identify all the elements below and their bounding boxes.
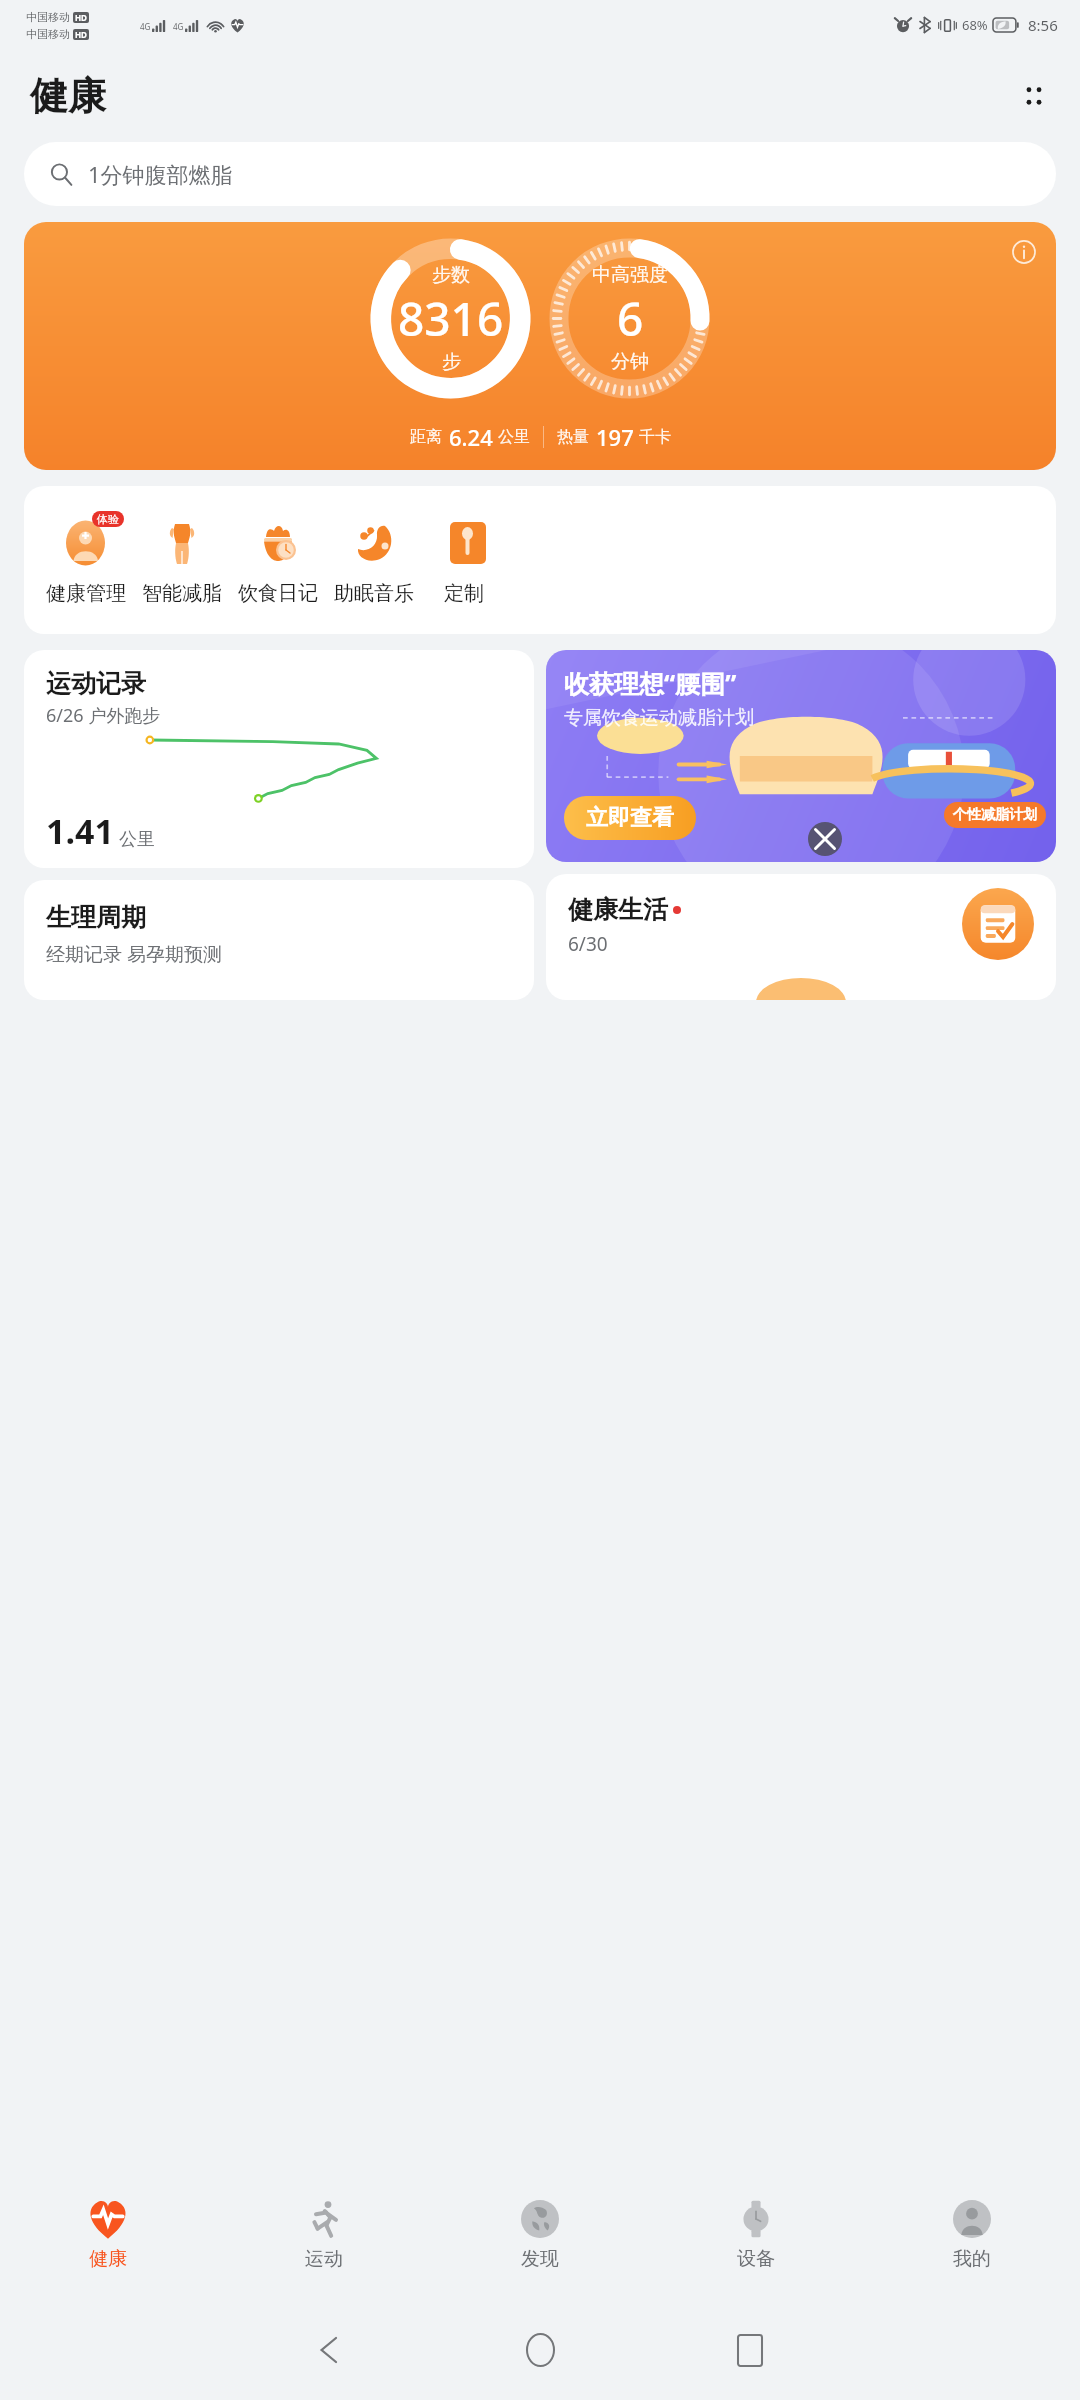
staticText: 分钟 [611,350,649,374]
staticText: 健康 [30,72,106,120]
staticText: 个性减脂计划 [953,806,1037,824]
staticText: 步 [442,350,461,374]
button[interactable]: Close ad [804,818,846,860]
staticText: 运动记录 [46,668,146,699]
staticText: 专属饮食运动减脂计划 [564,706,754,730]
staticText: 1.41 [46,808,114,854]
button[interactable]: 助眠音乐 [326,515,422,606]
staticText: 8:56 [1028,15,1058,35]
staticText: 饮食日记 [238,581,318,606]
staticText: 中国移动 [26,10,70,24]
staticText: HD [75,29,87,40]
button[interactable]: 健康 [0,2168,216,2300]
staticText: 立即查看 [586,804,674,832]
button[interactable]: 设备 [648,2168,864,2300]
staticText: 体验 [97,512,119,526]
button[interactable]: 我的 [864,2168,1080,2300]
button[interactable]: Home [485,2315,595,2385]
staticText: 中国移动 [26,27,70,41]
button[interactable]: Recents [695,2315,805,2385]
staticText: 公里 [119,828,155,851]
staticText: 经期记录 易孕期预测 [46,941,222,967]
staticText: 4G [140,21,151,32]
button[interactable]: 运动记录 [24,650,534,868]
button[interactable]: More options [1008,70,1060,122]
staticText: 6.24 [449,422,493,452]
staticText: 公里 [498,427,530,447]
staticText: 1分钟腹部燃脂 [88,159,233,189]
staticText: 6/30 [568,931,608,957]
staticText: 发现 [521,2247,559,2271]
button[interactable]: 运动 [216,2168,432,2300]
button[interactable]: 生理周期 [24,880,534,1000]
button[interactable]: Info [1004,232,1044,272]
staticText: 4G [173,21,184,32]
staticText: 健康生活 [568,894,668,925]
staticText: 千卡 [639,427,671,447]
staticText: 智能减脂 [142,581,222,606]
button[interactable]: 健康生活 [546,874,1056,1000]
staticText: 距离 [410,427,442,447]
staticText: 助眠音乐 [334,581,414,606]
button[interactable]: 1分钟腹部燃脂 [24,142,1056,206]
button[interactable]: 智能减脂 [134,515,230,606]
staticText: 6/26 户外跑步 [46,703,161,728]
button[interactable]: Back [275,2315,385,2385]
staticText: 收获理想“腰围” [564,666,737,700]
staticText: 8316 [398,287,504,350]
staticText: 我的 [953,2247,991,2271]
button[interactable]: 立即查看 [564,796,696,840]
button[interactable]: Info [24,222,1056,470]
staticText: 生理周期 [46,902,146,933]
staticText: HD [75,12,87,23]
staticText: 197 [596,422,634,452]
staticText: 步数 [432,263,470,287]
staticText: 运动 [305,2247,343,2271]
staticText: 健康管理 [46,581,126,606]
staticText: 定制 [444,581,484,606]
button[interactable]: 饮食日记 [230,515,326,606]
staticText: 68% [962,16,988,34]
button[interactable]: 定制 [422,515,506,606]
staticText: 6 [617,287,644,350]
button[interactable]: 体验 [38,515,134,606]
button[interactable]: 发现 [432,2168,648,2300]
staticText: 健康 [89,2247,127,2271]
staticText: 热量 [557,427,589,447]
button[interactable]: 收获理想“腰围” [546,650,1056,862]
staticText: 中高强度 [592,263,668,287]
staticText: 设备 [737,2247,775,2271]
